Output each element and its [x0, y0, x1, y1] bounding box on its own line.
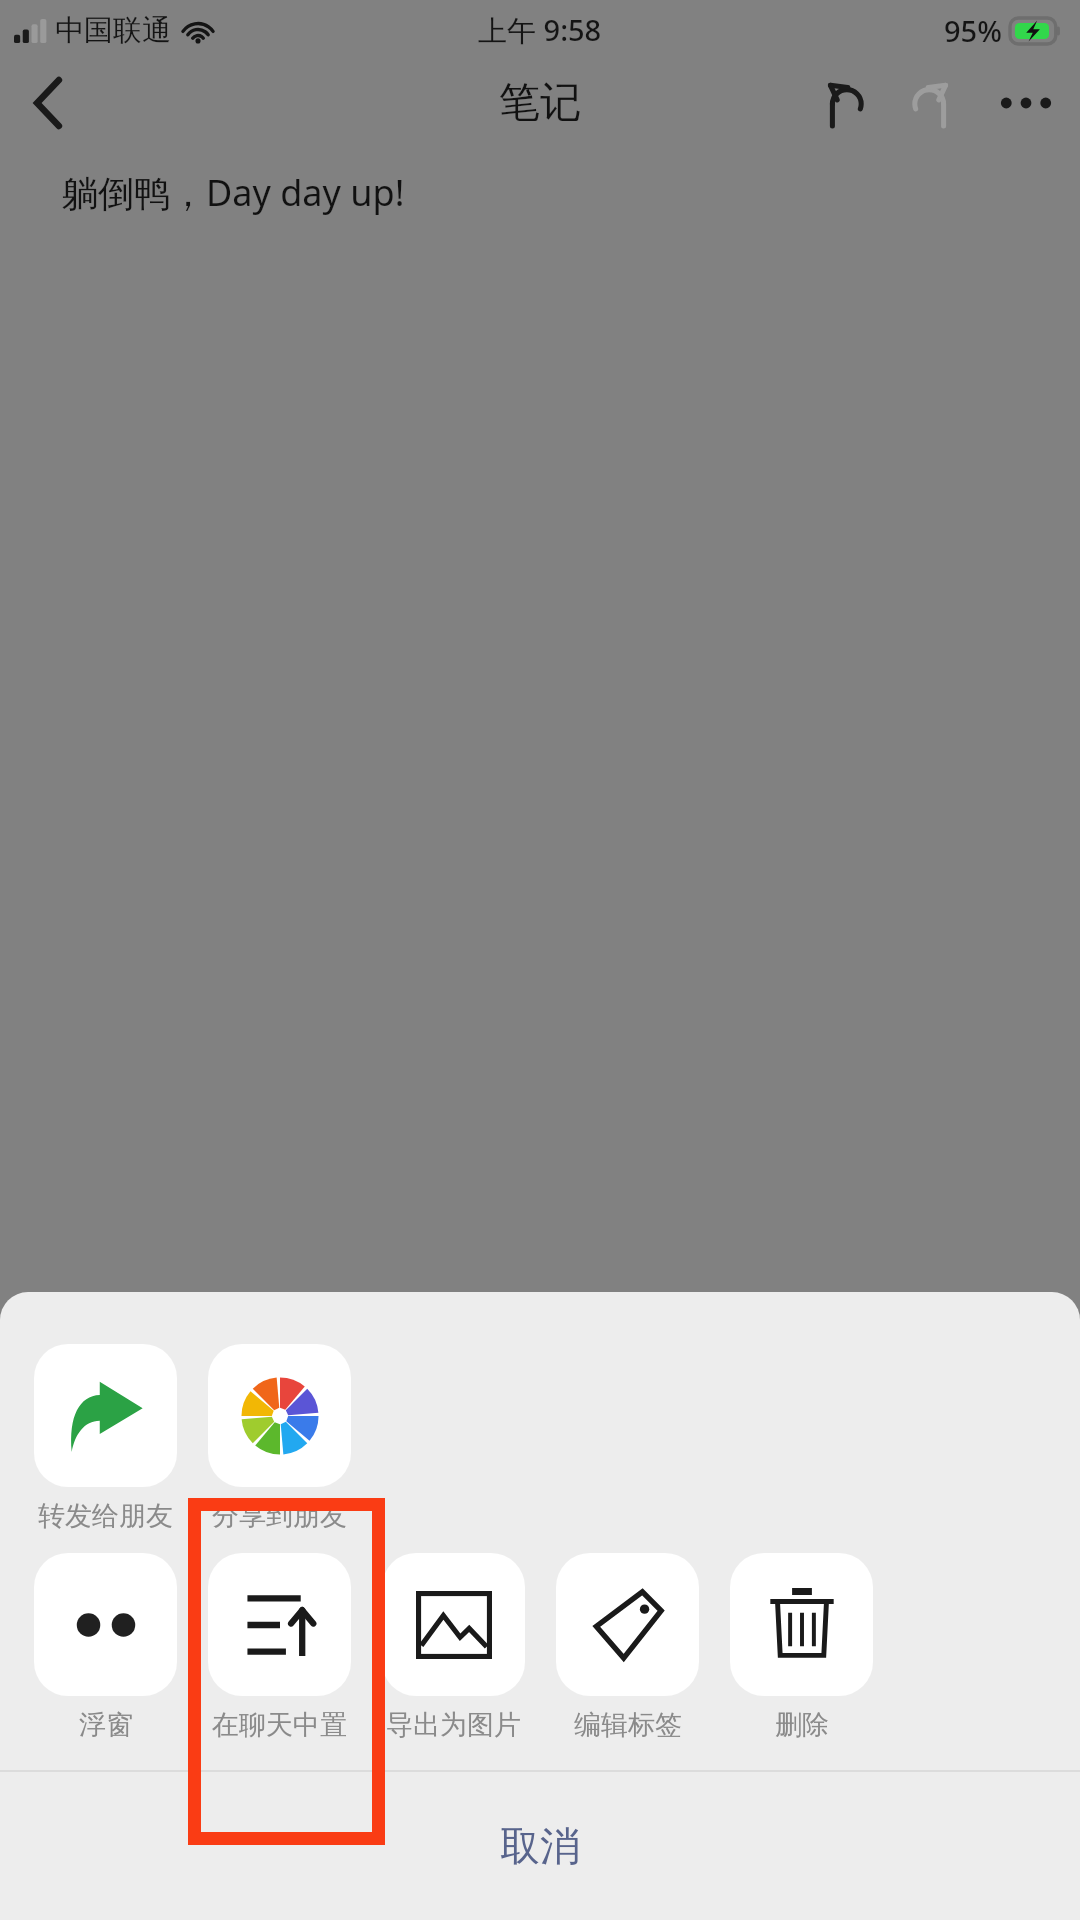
- button[interactable]: 删除: [730, 1553, 873, 1742]
- button[interactable]: Redo: [888, 60, 980, 146]
- button[interactable]: 转发给朋友: [34, 1344, 177, 1533]
- staticText: 分享到朋友圈: [208, 1499, 351, 1533]
- staticText: 导出为图片: [386, 1708, 521, 1742]
- staticText: 浮窗: [79, 1708, 133, 1742]
- button[interactable]: 取消: [0, 1772, 1080, 1920]
- staticText: 躺倒鸭，Day day up!: [62, 168, 405, 217]
- staticText: 取消: [500, 1821, 580, 1871]
- button[interactable]: Back: [0, 60, 96, 146]
- button[interactable]: 分享到朋友圈: [208, 1344, 351, 1533]
- button[interactable]: 浮窗: [34, 1553, 177, 1742]
- staticText: 上午 9:58: [478, 10, 602, 50]
- button[interactable]: 编辑标签: [556, 1553, 699, 1742]
- staticText: 编辑标签: [574, 1708, 682, 1742]
- button[interactable]: More options: [980, 60, 1072, 146]
- button[interactable]: 导出为图片: [382, 1553, 525, 1742]
- button[interactable]: 在聊天中置顶: [208, 1553, 351, 1742]
- staticText: 在聊天中置顶: [208, 1708, 351, 1742]
- staticText: 删除: [775, 1708, 829, 1742]
- staticText: 转发给朋友: [38, 1499, 173, 1533]
- staticText: 95%: [944, 11, 1002, 50]
- button[interactable]: Undo: [796, 60, 888, 146]
- staticText: 中国联通: [55, 12, 171, 49]
- staticText: 笔记: [499, 77, 581, 129]
